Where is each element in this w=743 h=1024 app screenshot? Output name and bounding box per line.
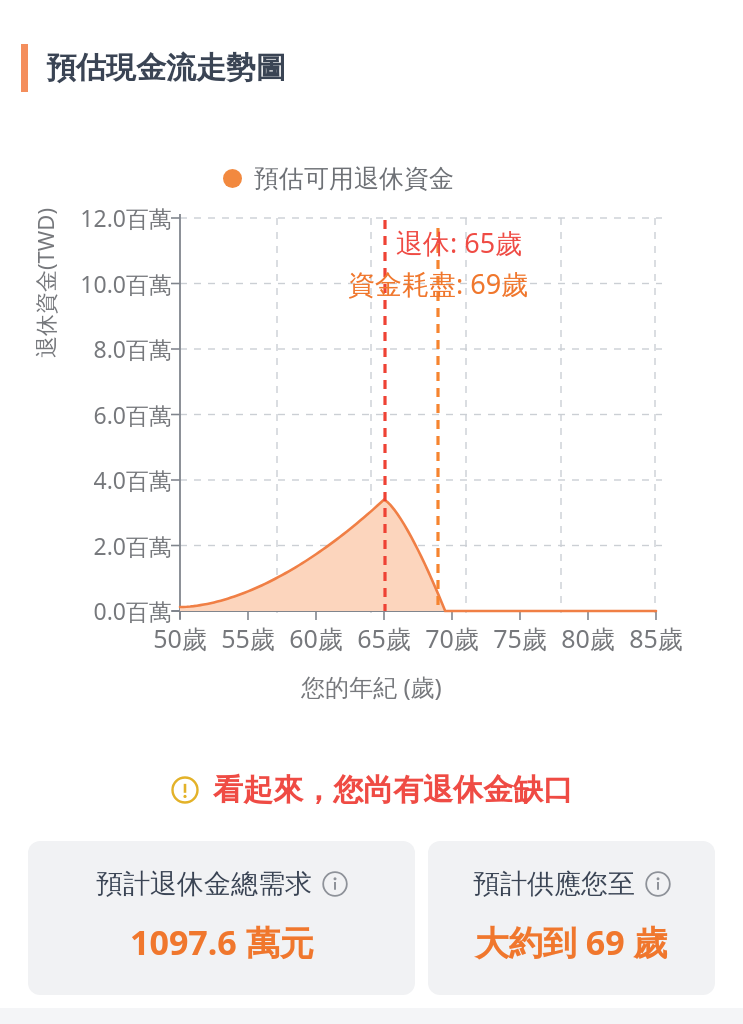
staticText: 12.0百萬 [58, 202, 172, 233]
staticText: 預計退休金總需求 [96, 867, 312, 901]
staticText: 75歲 [475, 621, 565, 655]
staticText: 8.0百萬 [58, 333, 172, 364]
staticText: 資金耗盡: 69歲 [348, 265, 529, 302]
staticText: 10.0百萬 [58, 268, 172, 299]
staticText: 85歲 [611, 621, 701, 655]
staticText: 55歲 [203, 621, 293, 655]
staticText: 預估現金流走勢圖 [46, 49, 286, 87]
button[interactable]: 預計供應您至說明 [645, 871, 671, 897]
staticText: 65歲 [339, 621, 429, 655]
staticText: 您的年紀 (歲) [0, 670, 743, 703]
staticText: 80歲 [543, 621, 633, 655]
staticText: 2.0百萬 [58, 530, 172, 561]
staticText: 50歲 [135, 621, 225, 655]
staticText: 70歲 [407, 621, 497, 655]
button[interactable]: 預計退休金總需求 [28, 841, 415, 995]
button[interactable]: 預計退休金總需求說明 [322, 871, 348, 897]
staticText: 4.0百萬 [58, 464, 172, 495]
staticText: 60歲 [271, 621, 361, 655]
staticText: 0.0百萬 [58, 595, 172, 626]
button[interactable]: 預計供應您至 [428, 841, 715, 995]
staticText: 退休: 65歲 [396, 224, 523, 261]
staticText: 看起來，您尚有退休金缺口 [213, 771, 573, 809]
staticText: 大約到 69 歲 [475, 919, 668, 965]
staticText: 1097.6 萬元 [130, 919, 314, 965]
staticText: 退休資金(TWD) [30, 193, 60, 373]
staticText: 預計供應您至 [473, 867, 635, 901]
staticText: 6.0百萬 [58, 399, 172, 430]
staticText: 預估可用退休資金 [254, 163, 454, 194]
